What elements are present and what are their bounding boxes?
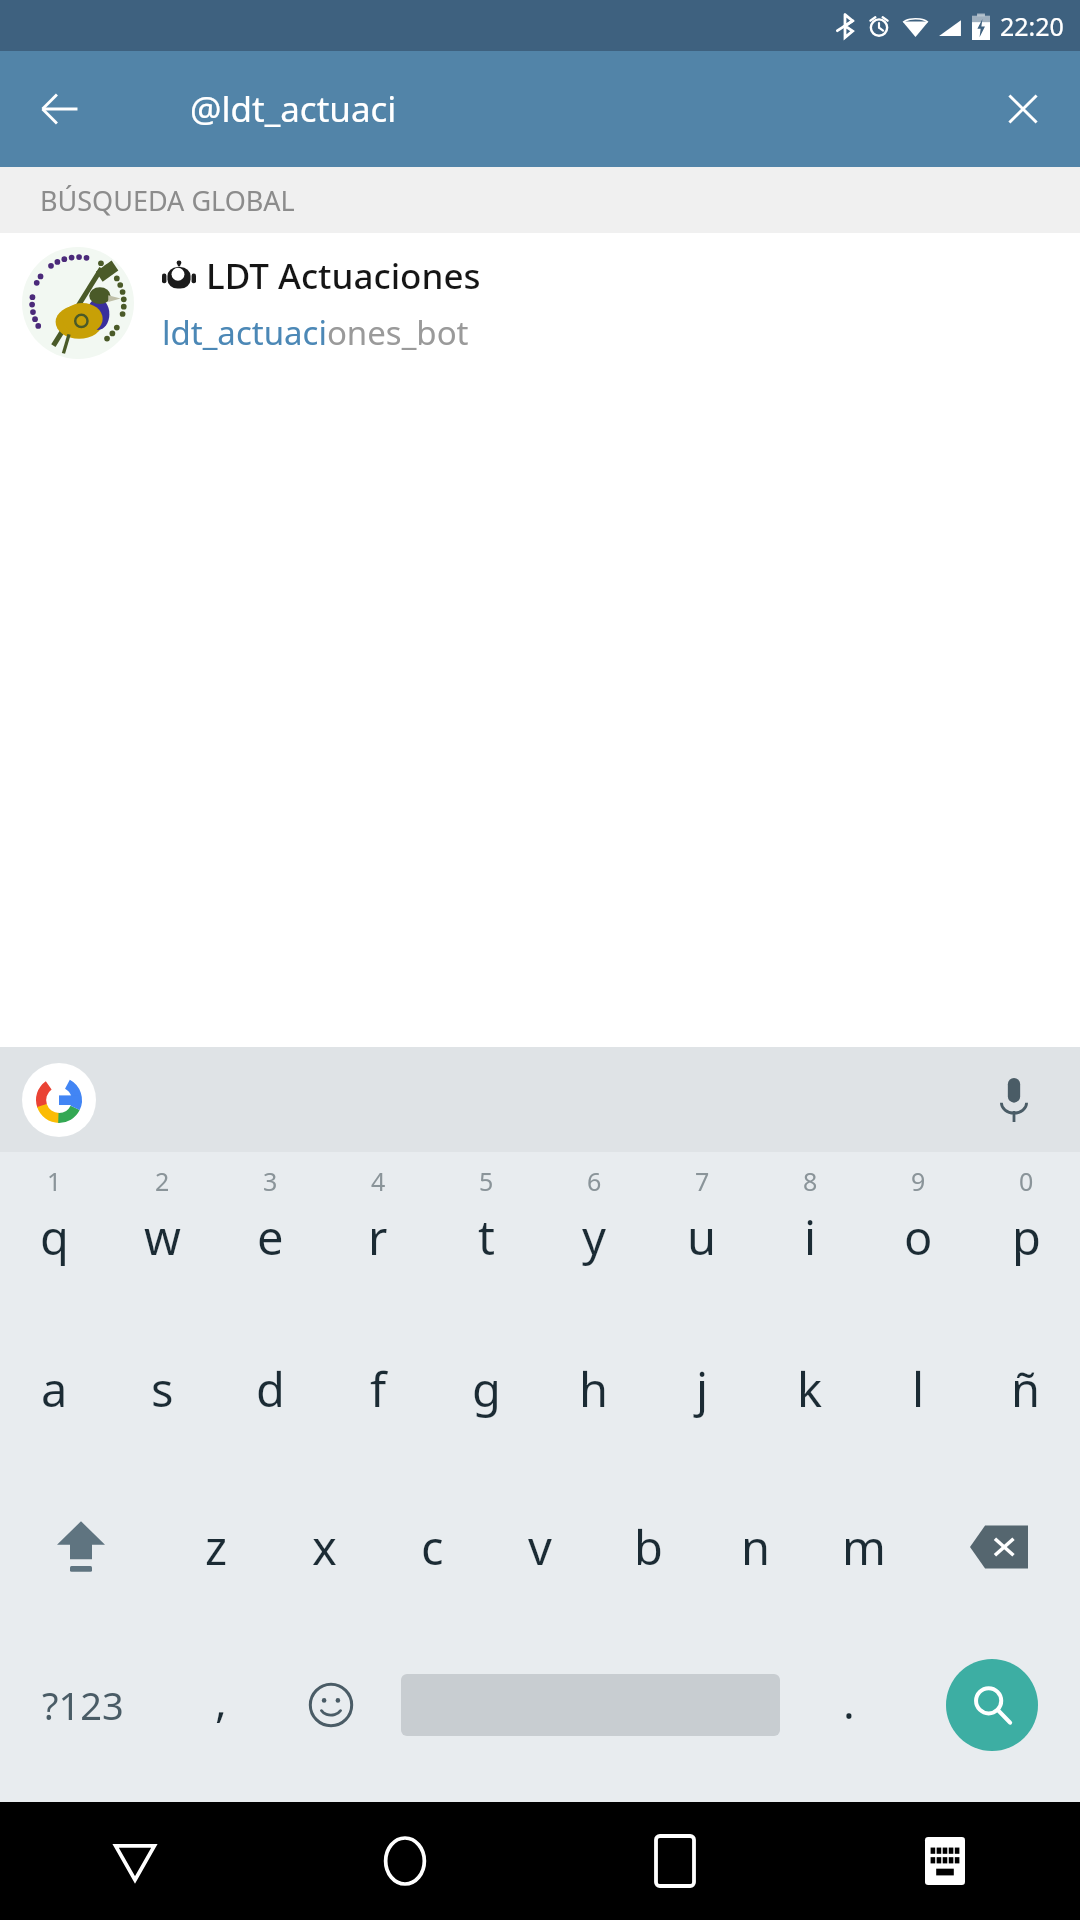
staticText: 6 (587, 1164, 602, 1198)
button[interactable]: d (216, 1310, 324, 1468)
button[interactable]: j (648, 1310, 756, 1468)
staticText: LDT Actuaciones (206, 252, 481, 300)
staticText: 8 (803, 1164, 818, 1198)
staticText: g (472, 1357, 501, 1421)
staticText: v (528, 1515, 552, 1579)
button[interactable]: f (324, 1310, 432, 1468)
staticText: d (256, 1357, 285, 1421)
button[interactable]: Shift (0, 1468, 162, 1626)
button[interactable]: Recent apps (540, 1802, 810, 1920)
staticText: i (804, 1205, 817, 1269)
button[interactable]: c (378, 1468, 486, 1626)
button[interactable]: Emoji (276, 1626, 386, 1784)
button[interactable]: s (108, 1310, 216, 1468)
staticText: @ldt_actuaci (190, 85, 397, 133)
button[interactable]: 0 (972, 1152, 1080, 1310)
button[interactable]: Voice input (978, 1064, 1050, 1136)
button[interactable]: , (166, 1626, 276, 1784)
staticText: x (312, 1515, 337, 1579)
staticText: m (842, 1515, 886, 1579)
button[interactable]: Switch keyboard (810, 1802, 1080, 1920)
button[interactable]: Search (904, 1626, 1080, 1784)
button[interactable]: 7 (648, 1152, 756, 1310)
staticText: 2 (155, 1164, 170, 1198)
staticText: a (41, 1357, 68, 1421)
button[interactable]: Home (270, 1802, 540, 1920)
button[interactable]: g (432, 1310, 540, 1468)
button[interactable]: 3 (216, 1152, 324, 1310)
staticText: 5 (479, 1164, 494, 1198)
staticText: . (843, 1672, 855, 1732)
staticText: y (582, 1205, 606, 1269)
staticText: f (370, 1357, 387, 1421)
staticText: 22:20 (1000, 9, 1064, 43)
staticText: k (797, 1357, 823, 1421)
staticText: b (634, 1515, 663, 1579)
staticText: r (368, 1205, 388, 1269)
button[interactable]: Google (22, 1063, 96, 1137)
staticText: o (904, 1205, 933, 1269)
button[interactable]: Back (24, 73, 96, 145)
button[interactable]: 2 (108, 1152, 216, 1310)
button[interactable]: l (864, 1310, 972, 1468)
staticText: 7 (695, 1164, 710, 1198)
button[interactable]: Clear search (988, 74, 1058, 144)
button[interactable]: Space (386, 1626, 794, 1784)
button[interactable]: 4 (324, 1152, 432, 1310)
button[interactable]: m (810, 1468, 918, 1626)
button[interactable]: 6 (540, 1152, 648, 1310)
button[interactable]: a (0, 1310, 108, 1468)
button[interactable]: n (702, 1468, 810, 1626)
staticText: p (1012, 1205, 1041, 1269)
button[interactable]: . (794, 1626, 904, 1784)
button[interactable]: ñ (972, 1310, 1080, 1468)
staticText: z (205, 1515, 228, 1579)
staticText: 4 (371, 1164, 386, 1198)
button[interactable]: Back (0, 1802, 270, 1920)
staticText: l (912, 1357, 925, 1421)
staticText: c (421, 1515, 444, 1579)
button[interactable]: 9 (864, 1152, 972, 1310)
staticText: e (257, 1205, 284, 1269)
staticText: , (215, 1670, 227, 1730)
staticText: s (151, 1357, 174, 1421)
staticText: 9 (911, 1164, 926, 1198)
staticText: q (40, 1205, 69, 1269)
staticText: ?123 (42, 1679, 124, 1731)
button[interactable]: 1 (0, 1152, 108, 1310)
staticText: ldt_actuaciones_bot (162, 310, 469, 355)
staticText: h (579, 1357, 609, 1421)
staticText: 3 (263, 1164, 278, 1198)
button[interactable]: b (594, 1468, 702, 1626)
staticText: n (741, 1515, 771, 1579)
button[interactable]: k (756, 1310, 864, 1468)
staticText: 0 (1019, 1164, 1034, 1198)
staticText: w (144, 1205, 181, 1269)
staticText: u (687, 1205, 717, 1269)
button[interactable]: 8 (756, 1152, 864, 1310)
button[interactable]: z (162, 1468, 270, 1626)
staticText: t (478, 1205, 495, 1269)
staticText: BÚSQUEDA GLOBAL (40, 182, 295, 219)
button[interactable]: ?123 (0, 1626, 166, 1784)
button[interactable]: LDT Actuaciones (0, 233, 1080, 373)
button[interactable]: v (486, 1468, 594, 1626)
button[interactable]: x (270, 1468, 378, 1626)
staticText: j (696, 1357, 709, 1421)
staticText: ñ (1011, 1357, 1041, 1421)
staticText: 1 (47, 1164, 62, 1198)
button[interactable]: Backspace (918, 1468, 1080, 1626)
button[interactable]: h (540, 1310, 648, 1468)
button[interactable]: 5 (432, 1152, 540, 1310)
